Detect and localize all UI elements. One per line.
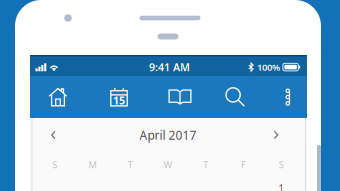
- button[interactable]: 1: [262, 180, 300, 191]
- button[interactable]: Search: [212, 76, 258, 118]
- button[interactable]: Next month: [261, 122, 291, 148]
- staticText: 100%: [257, 61, 280, 73]
- staticText: M: [88, 158, 96, 171]
- button[interactable]: Home: [35, 76, 81, 118]
- staticText: S: [52, 158, 57, 171]
- staticText: T: [128, 158, 133, 171]
- button[interactable]: Calendar: [96, 76, 142, 118]
- staticText: F: [241, 158, 246, 171]
- staticText: 1: [278, 181, 284, 191]
- button[interactable]: Previous month: [38, 122, 68, 148]
- staticText: 15: [113, 93, 125, 107]
- staticText: S: [279, 158, 284, 171]
- button[interactable]: Reading list: [157, 76, 203, 118]
- staticText: T: [203, 158, 208, 171]
- staticText: W: [163, 158, 172, 171]
- staticText: 9:41 AM: [149, 60, 190, 74]
- button[interactable]: More options: [273, 76, 303, 118]
- staticText: April 2017: [139, 127, 196, 143]
- button[interactable]: April 2017: [108, 122, 228, 148]
